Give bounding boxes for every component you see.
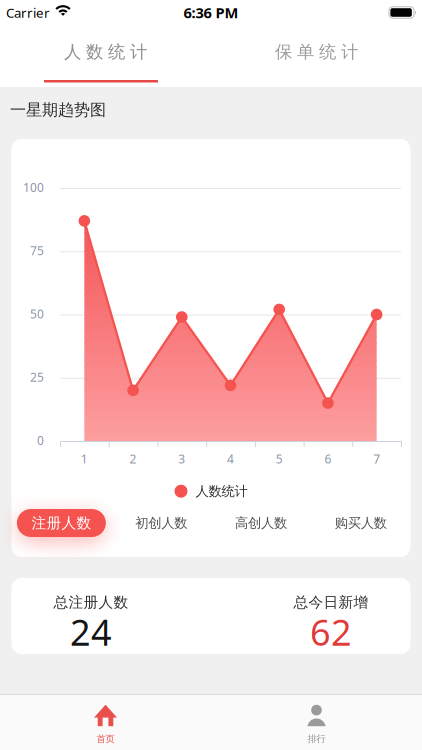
staticText: 保单统计 — [275, 41, 358, 63]
staticText: 1 — [81, 451, 88, 467]
staticText: 购买人数 — [335, 515, 387, 531]
button[interactable]: 高创人数 — [211, 509, 311, 537]
button[interactable]: 购买人数 — [311, 509, 411, 537]
staticText: 6:36 PM — [183, 3, 238, 22]
staticText: 24 — [70, 608, 112, 656]
staticText: 62 — [310, 608, 352, 656]
button[interactable]: 人数统计 — [0, 21, 211, 83]
button[interactable]: 注册人数 — [17, 509, 106, 537]
staticText: 人数统计 — [64, 41, 147, 63]
staticText: 人数统计 — [195, 483, 247, 499]
staticText: 5 — [276, 451, 283, 467]
staticText: 25 — [30, 369, 44, 385]
staticText: 7 — [373, 451, 380, 467]
staticText: 总注册人数 — [53, 593, 128, 611]
staticText: 注册人数 — [31, 514, 91, 532]
staticText: 4 — [227, 451, 234, 467]
staticText: 初创人数 — [135, 515, 187, 531]
staticText: 排行 — [307, 733, 325, 745]
staticText: 100 — [23, 179, 44, 195]
staticText: 75 — [30, 243, 44, 259]
button[interactable]: 初创人数 — [111, 509, 211, 537]
staticText: 0 — [37, 432, 44, 448]
staticText: Carrier — [6, 4, 50, 21]
staticText: 2 — [130, 451, 137, 467]
staticText: 首页 — [96, 733, 114, 745]
staticText: 总今日新增 — [293, 593, 368, 611]
staticText: 高创人数 — [235, 515, 287, 531]
button[interactable]: 保单统计 — [211, 21, 422, 83]
button[interactable]: 首页 — [0, 695, 211, 750]
staticText: 3 — [178, 451, 185, 467]
staticText: 一星期趋势图 — [10, 100, 106, 120]
staticText: 6 — [324, 451, 331, 467]
button[interactable]: 排行 — [211, 695, 422, 750]
staticText: 50 — [30, 306, 44, 322]
